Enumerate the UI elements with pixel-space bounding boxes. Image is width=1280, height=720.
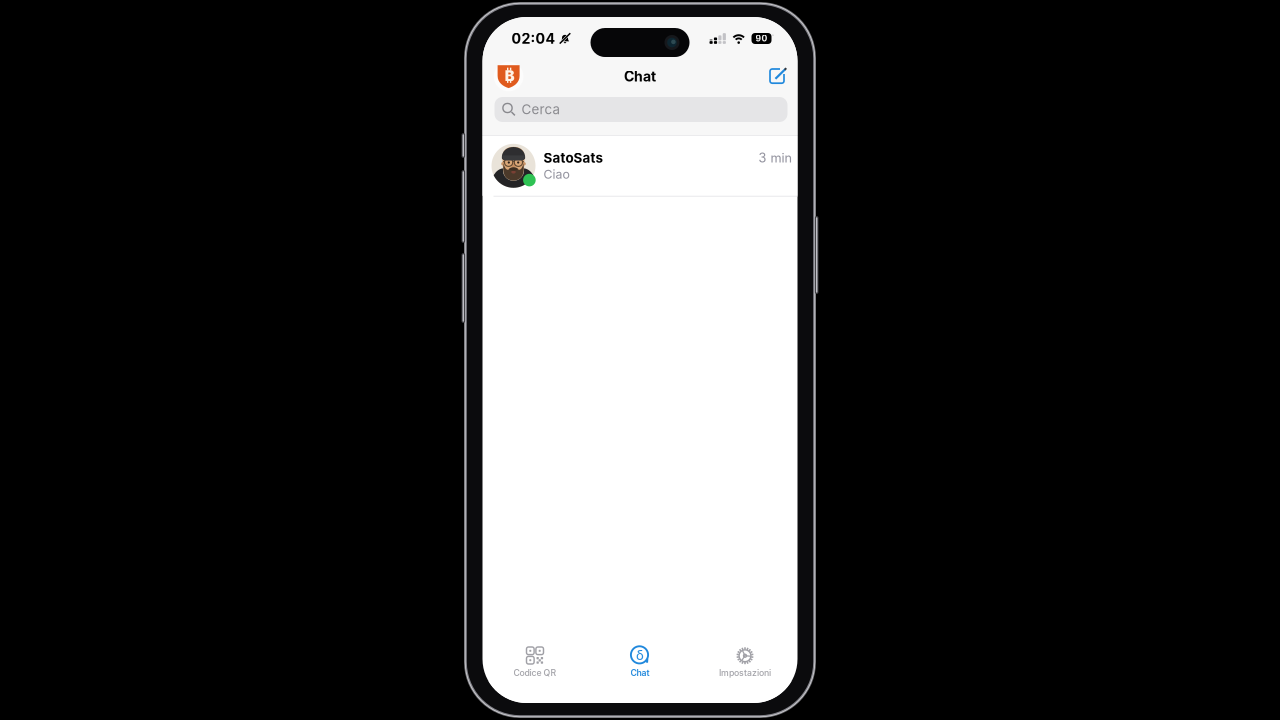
button[interactable]: SatoSats [482, 136, 797, 196]
staticText: 90 [755, 33, 767, 44]
button[interactable]: Account [495, 62, 525, 91]
staticText: Chat [630, 667, 649, 678]
button[interactable]: Impostazioni [692, 644, 797, 681]
staticText: Codice QR [513, 667, 556, 678]
staticText: 02:04 [511, 30, 555, 47]
staticText: Impostazioni [719, 667, 771, 678]
staticText: 3 min [758, 150, 791, 165]
button[interactable]: Codice QR [482, 644, 587, 681]
staticText: SatoSats [543, 150, 602, 166]
staticText: Ciao [543, 167, 569, 182]
button[interactable]: Cerca [494, 97, 787, 122]
button[interactable]: δ [587, 644, 692, 681]
staticText: δ [636, 647, 644, 663]
staticText: Cerca [521, 101, 559, 117]
staticText: Chat [624, 68, 656, 85]
staticText: B [505, 67, 515, 85]
button[interactable]: New message [769, 68, 787, 85]
